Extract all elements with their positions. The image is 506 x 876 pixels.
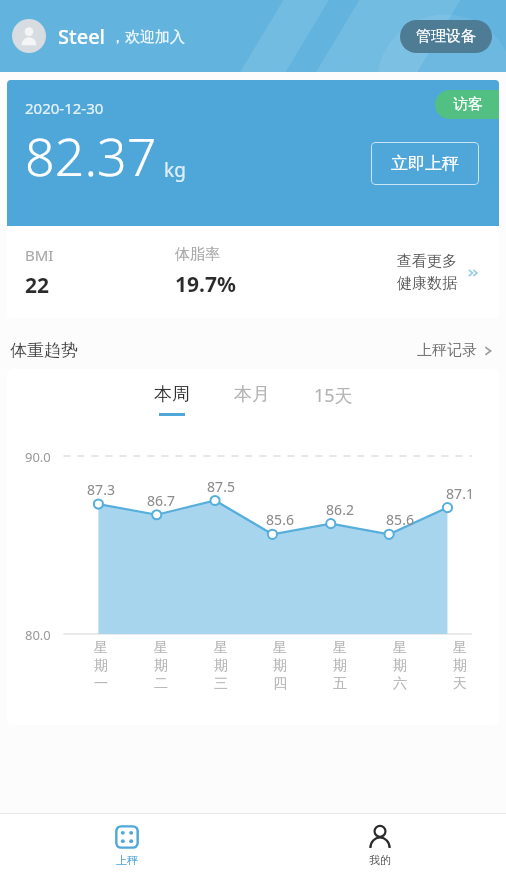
staticText: 体重趋势 (10, 340, 78, 361)
staticText: 健康数据 (397, 274, 457, 293)
staticText: 四 (273, 675, 287, 693)
staticText: 期 (154, 657, 168, 675)
staticText: ，欢迎加入 (106, 26, 185, 46)
staticText: kg (164, 157, 186, 183)
staticText: 三 (214, 675, 228, 693)
staticText: 本周 (154, 383, 190, 406)
staticText: 90.0 (25, 448, 51, 466)
staticText: 上秤 (116, 853, 138, 867)
button[interactable]: 体重趋势 (0, 340, 506, 361)
button[interactable]: 15天 (308, 383, 359, 418)
button[interactable]: 本月 (228, 383, 276, 416)
staticText: 管理设备 (416, 27, 476, 46)
staticText: 星 (154, 639, 168, 657)
staticText: 上秤记录 (417, 341, 477, 360)
button[interactable]: 立即上秤 (371, 142, 479, 185)
staticText: 期 (273, 657, 287, 675)
staticText: 87.1 (446, 484, 474, 503)
staticText: 15天 (314, 383, 353, 408)
staticText: 星 (453, 639, 467, 657)
staticText: 85.6 (386, 510, 414, 529)
staticText: 星 (333, 639, 347, 657)
staticText: 星 (94, 639, 108, 657)
staticText: 87.5 (207, 477, 235, 496)
staticText: 立即上秤 (391, 153, 459, 174)
button[interactable]: Profile (12, 19, 46, 53)
staticText: 我的 (369, 853, 391, 867)
button[interactable]: 我的 Me (253, 814, 506, 876)
staticText: 本月 (234, 383, 270, 406)
button[interactable]: 上秤 Scale (0, 814, 253, 876)
staticText: 19.7% (175, 270, 236, 299)
staticText: 期 (453, 657, 467, 675)
staticText: 星 (214, 639, 228, 657)
button[interactable]: 管理设备 (400, 20, 492, 53)
staticText: 体脂率 (175, 245, 220, 264)
staticText: 期 (333, 657, 347, 675)
staticText: 天 (453, 675, 467, 693)
staticText: 六 (393, 675, 407, 693)
staticText: 80.0 (25, 626, 51, 644)
button[interactable]: 查看更多 (397, 252, 481, 293)
button[interactable]: 访客 (435, 90, 499, 119)
staticText: Steel (58, 23, 106, 50)
button[interactable]: 本周 (148, 383, 196, 416)
staticText: 22 (25, 271, 50, 300)
staticText: 访客 (453, 95, 483, 114)
staticText: 期 (94, 657, 108, 675)
staticText: 87.3 (87, 480, 115, 499)
staticText: 星 (273, 639, 287, 657)
staticText: 86.2 (326, 500, 354, 519)
staticText: 五 (333, 675, 347, 693)
staticText: 查看更多 (397, 252, 457, 271)
staticText: BMI (25, 245, 54, 265)
staticText: 2020-12-30 (25, 98, 104, 118)
staticText: 期 (393, 657, 407, 675)
staticText: 期 (214, 657, 228, 675)
staticText: 85.6 (266, 510, 294, 529)
staticText: 二 (154, 675, 168, 693)
staticText: 82.37 (25, 120, 157, 191)
staticText: 86.7 (147, 491, 175, 510)
staticText: 一 (94, 675, 108, 693)
staticText: 星 (393, 639, 407, 657)
